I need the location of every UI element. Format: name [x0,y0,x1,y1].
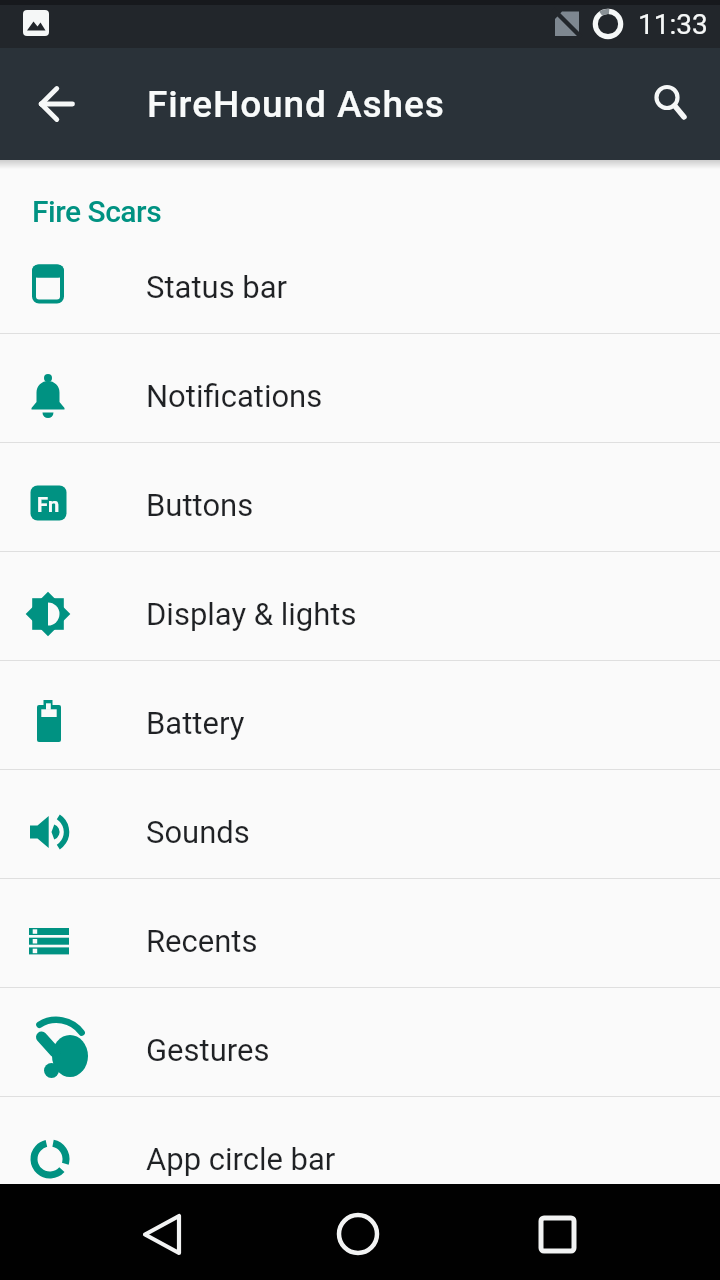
button[interactable] [126,1196,198,1268]
button[interactable]: App circle bar [0,1097,720,1206]
button[interactable]: Gestures [0,988,720,1097]
staticText: App circle bar [146,1141,336,1177]
button[interactable] [24,72,88,136]
button[interactable]: Status bar [0,225,720,334]
staticText: Fire Scars [32,194,162,229]
staticText: Notifications [146,378,323,414]
staticText: Status bar [146,269,288,305]
staticText: Battery [146,705,245,741]
button[interactable]: Display & lights [0,552,720,661]
button[interactable] [522,1196,594,1268]
staticText: 11:33 [638,8,708,41]
staticText: Fn [37,493,60,516]
button[interactable]: Sounds [0,770,720,879]
button[interactable]: Fn [0,443,720,552]
button[interactable]: Battery [0,661,720,770]
staticText: FireHound Ashes [147,83,445,126]
staticText: Sounds [146,814,250,850]
staticText: Buttons [146,487,254,523]
button[interactable]: Notifications [0,334,720,443]
staticText: Gestures [146,1032,270,1068]
button[interactable] [324,1196,396,1268]
button[interactable]: Recents [0,879,720,988]
staticText: Display & lights [146,596,357,632]
button[interactable] [638,76,694,132]
staticText: Recents [146,923,258,959]
